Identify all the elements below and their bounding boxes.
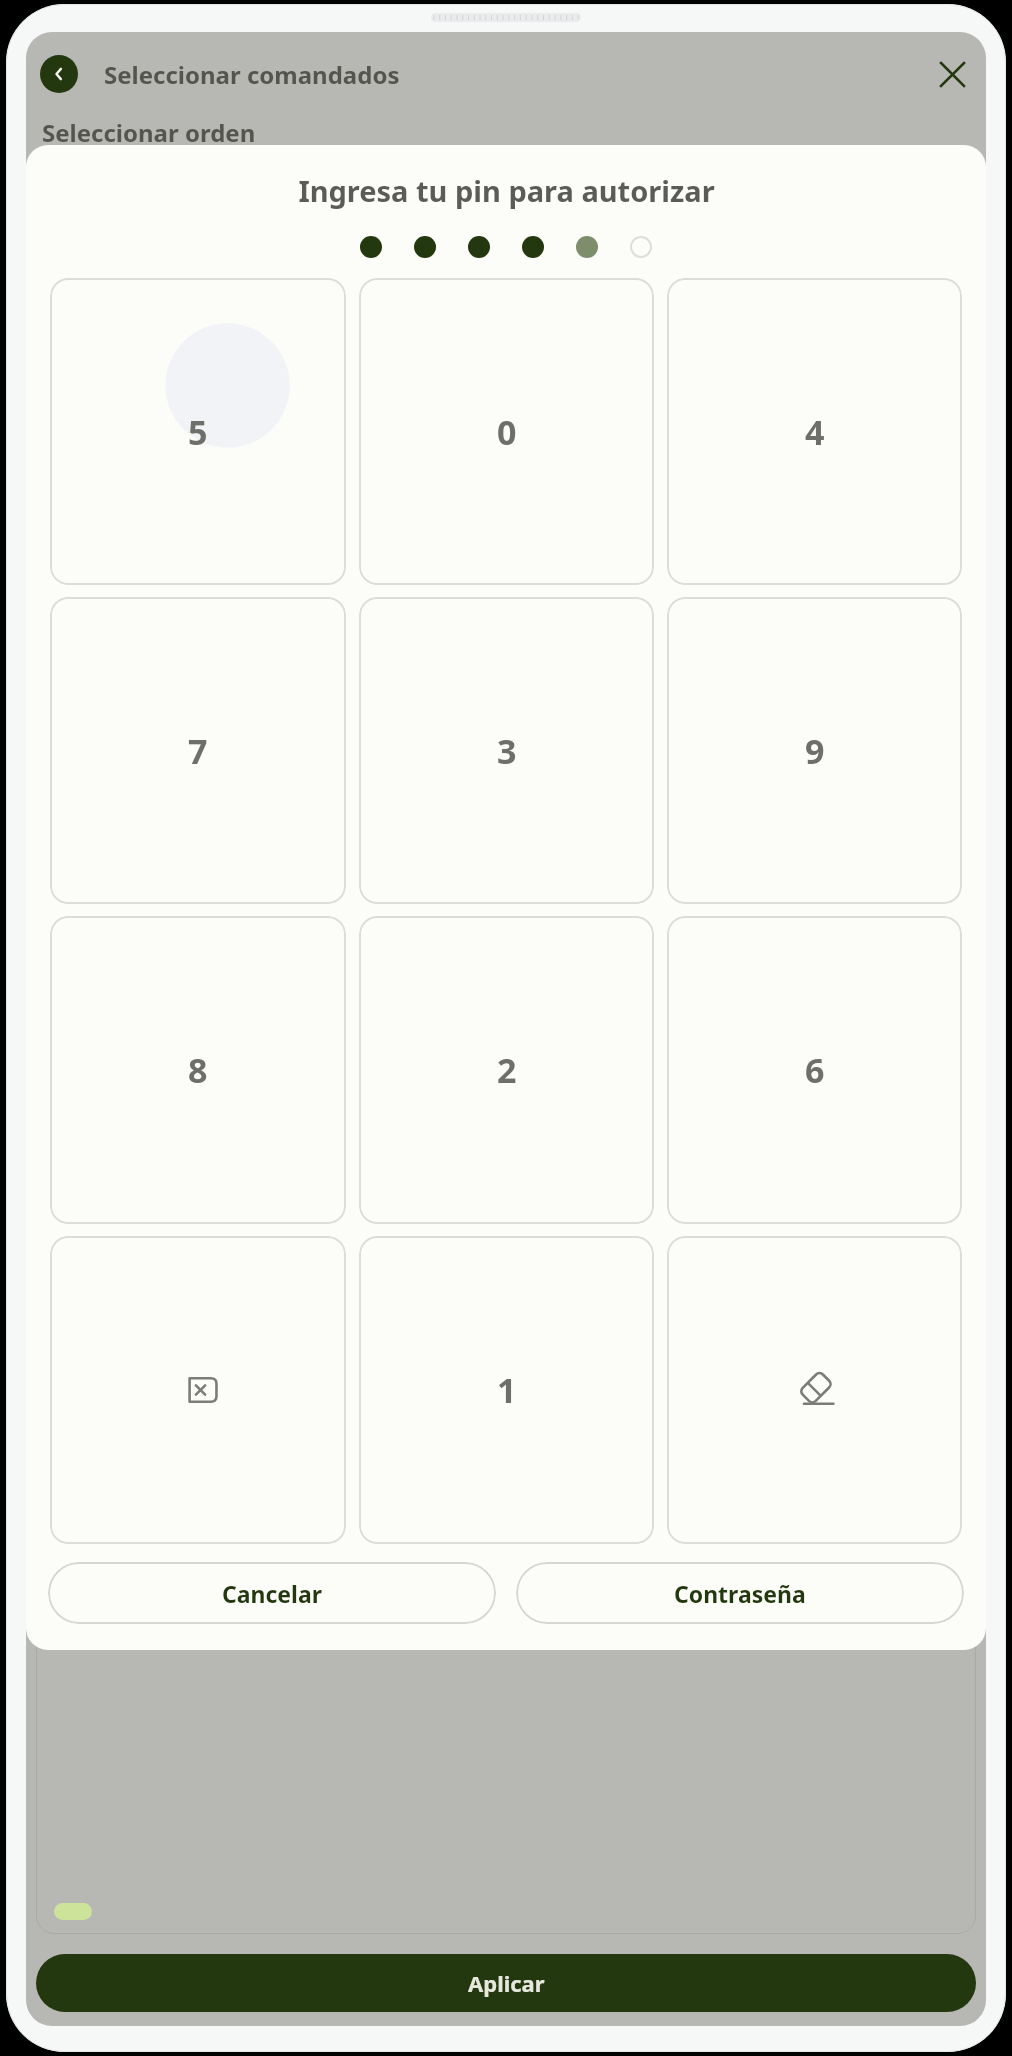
staticText: 1: [497, 1367, 517, 1413]
staticText: 8: [188, 1047, 208, 1093]
staticText: 2: [497, 1047, 517, 1093]
button[interactable]: 2: [359, 916, 654, 1224]
button[interactable]: Clear: [667, 1236, 962, 1544]
button[interactable]: Cancelar: [48, 1562, 496, 1624]
button[interactable]: Close: [932, 54, 972, 94]
staticText: Ingresa tu pin para autorizar: [298, 171, 715, 210]
button[interactable]: Back: [40, 55, 78, 93]
button[interactable]: Backspace: [50, 1236, 346, 1544]
staticText: Aplicar: [468, 1968, 545, 1998]
button[interactable]: 1: [359, 1236, 654, 1544]
button[interactable]: 8: [50, 916, 346, 1224]
staticText: Cancelar: [222, 1578, 323, 1609]
button[interactable]: 6: [667, 916, 962, 1224]
staticText: 3: [497, 728, 517, 774]
staticText: 6: [805, 1047, 825, 1093]
staticText: Seleccionar orden: [42, 116, 256, 149]
button[interactable]: Aplicar: [36, 1954, 976, 2012]
button[interactable]: 5: [50, 278, 346, 585]
staticText: 5: [188, 409, 208, 455]
staticText: Contraseña: [674, 1578, 806, 1609]
button[interactable]: 4: [667, 278, 962, 585]
button[interactable]: 3: [359, 597, 654, 904]
staticText: 0: [497, 409, 517, 455]
staticText: Seleccionar comandados: [104, 58, 400, 91]
button[interactable]: Contraseña: [516, 1562, 964, 1624]
staticText: 9: [805, 728, 825, 774]
staticText: 4: [805, 409, 825, 455]
button[interactable]: 9: [667, 597, 962, 904]
button[interactable]: 0: [359, 278, 654, 585]
button[interactable]: 7: [50, 597, 346, 904]
staticText: 7: [188, 728, 208, 774]
